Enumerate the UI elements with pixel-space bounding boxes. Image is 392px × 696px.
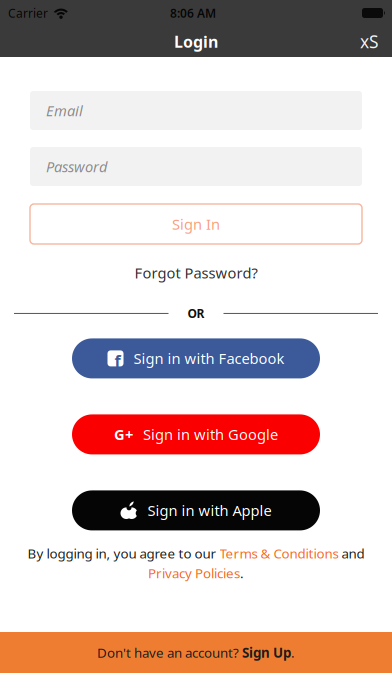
staticText: Don't have an account? [97,644,242,661]
staticText: f [114,350,120,371]
staticText: By logging in, you agree to our [27,544,219,562]
button[interactable]: G+ [72,414,320,454]
staticText: Privacy Policies [148,564,240,582]
staticText: . [240,564,244,582]
button[interactable]: Sign In [30,204,362,244]
staticText: Email [46,101,83,120]
button[interactable]: Forgot Password? [134,263,257,282]
staticText: Login [174,31,218,52]
staticText: Sign in with Facebook [133,349,284,368]
button[interactable]: Privacy Policies [148,564,240,582]
staticText: xS [360,30,379,53]
staticText: Sign Up [242,644,291,661]
staticText: G+ [114,425,133,444]
staticText: and [338,544,364,562]
staticText: Sign in with Apple [147,501,271,520]
staticText: OR [187,305,204,321]
staticText: 8:06 AM [170,5,216,21]
button[interactable]: f [72,338,320,378]
staticText: . [291,644,295,661]
staticText: Sign In [172,214,220,234]
staticText: Forgot Password? [134,263,257,282]
staticText: Sign in with Google [143,425,278,444]
button[interactable]: Sign in with Apple [72,490,320,530]
staticText: Terms & Conditions [219,544,338,562]
button[interactable]: Don't have an account? [0,632,392,673]
staticText: Carrier [8,5,48,21]
button[interactable]: Terms & Conditions [219,544,338,562]
staticText: Password [46,157,107,176]
button[interactable]: xS [360,30,379,53]
